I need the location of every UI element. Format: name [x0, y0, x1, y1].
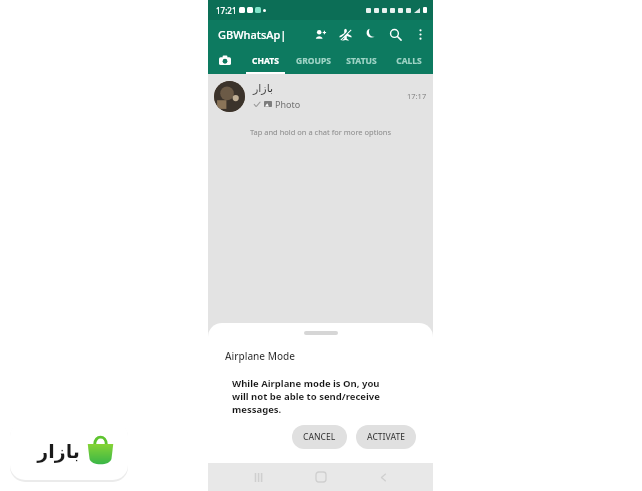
button[interactable]: بازار	[208, 74, 433, 118]
staticText: GROUPS	[296, 55, 331, 67]
button[interactable]: Add contact	[312, 26, 328, 42]
staticText: بازار	[253, 82, 274, 95]
staticText: CALLS	[396, 55, 422, 67]
button[interactable]: Camera	[208, 48, 242, 74]
staticText: Photo	[275, 98, 301, 110]
staticText: GBWhatsAp|	[218, 27, 287, 42]
button[interactable]: STATUS	[337, 48, 385, 74]
button[interactable]: Airplane mode	[337, 26, 353, 42]
staticText: 17:21	[216, 5, 237, 16]
button[interactable]: CHATS	[242, 48, 289, 74]
button[interactable]: CALLS	[385, 48, 433, 74]
button[interactable]: ACTIVATE	[356, 425, 416, 449]
staticText: STATUS	[346, 55, 377, 67]
button[interactable]: CANCEL	[292, 425, 347, 449]
staticText: CANCEL	[303, 431, 336, 443]
staticText: CHATS	[252, 55, 279, 67]
button[interactable]: More options	[412, 26, 428, 42]
button[interactable]: Night mode	[362, 26, 378, 42]
staticText: While Airplane mode is On, you will not …	[232, 377, 380, 416]
button[interactable]: Recents	[245, 464, 271, 490]
staticText: بازار	[23, 440, 80, 462]
staticText: ACTIVATE	[367, 431, 405, 443]
button[interactable]: Search	[387, 26, 403, 42]
staticText: 17:17	[407, 91, 427, 101]
staticText: Airplane Mode	[225, 349, 295, 363]
staticText: Tap and hold on a chat for more options	[208, 127, 433, 137]
button[interactable]: Home	[308, 464, 334, 490]
button[interactable]: Bazaar	[10, 421, 128, 480]
button[interactable]: GROUPS	[289, 48, 337, 74]
button[interactable]: Back	[370, 464, 396, 490]
